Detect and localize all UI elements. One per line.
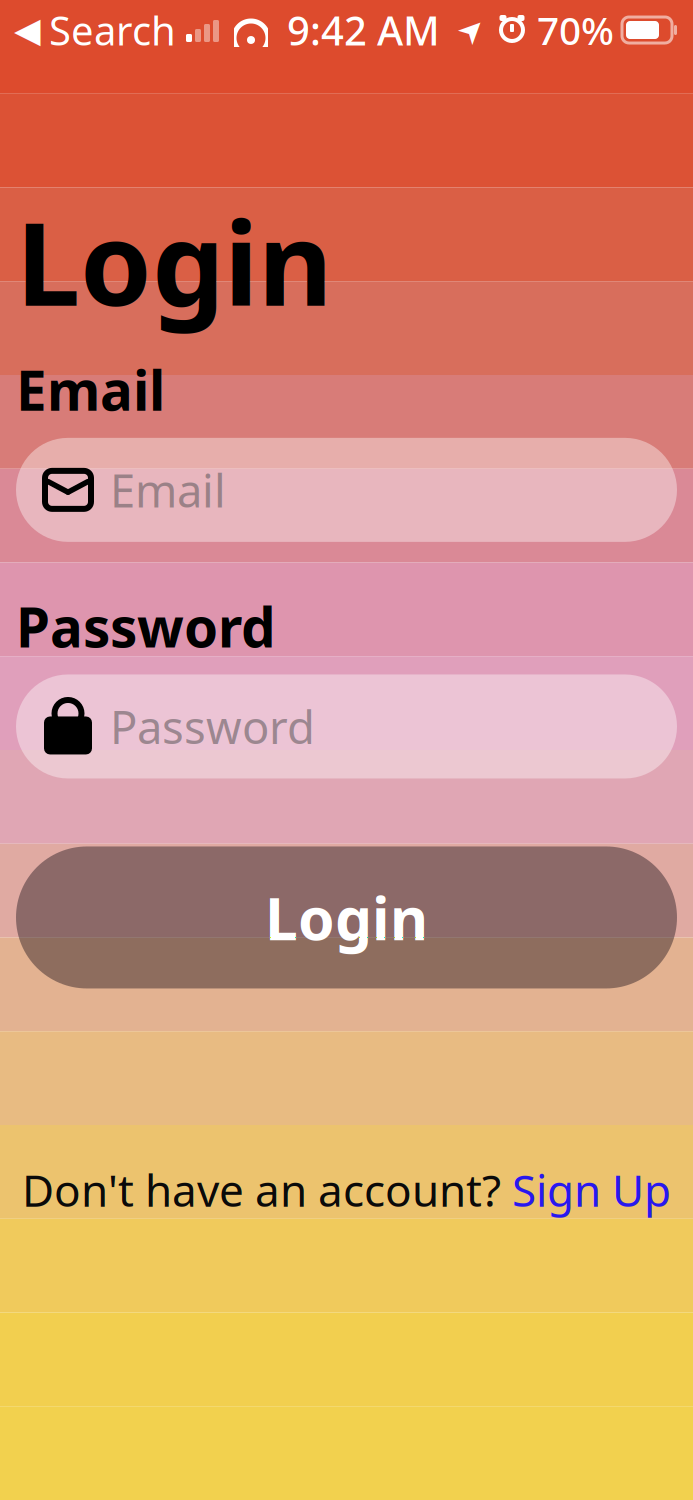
staticText: ➤ <box>458 12 485 48</box>
staticText: Password <box>16 590 276 662</box>
staticText: 9:42 AM <box>287 3 440 56</box>
button[interactable]: Login <box>0 846 693 988</box>
staticText: Email <box>110 460 226 520</box>
staticText: Login <box>265 878 428 956</box>
button[interactable]: Password <box>0 674 693 778</box>
staticText: Login <box>16 185 333 337</box>
button[interactable]: Sign Up <box>512 1160 671 1219</box>
staticText: Don't have an account? <box>22 1160 512 1219</box>
staticText: Search <box>49 3 176 56</box>
button[interactable]: Email <box>0 438 693 542</box>
staticText: 70% <box>537 4 614 56</box>
staticText: Email <box>16 353 165 426</box>
staticText: Password <box>110 696 315 757</box>
staticText: Sign Up <box>512 1160 671 1219</box>
staticText: ◀ <box>14 10 41 50</box>
